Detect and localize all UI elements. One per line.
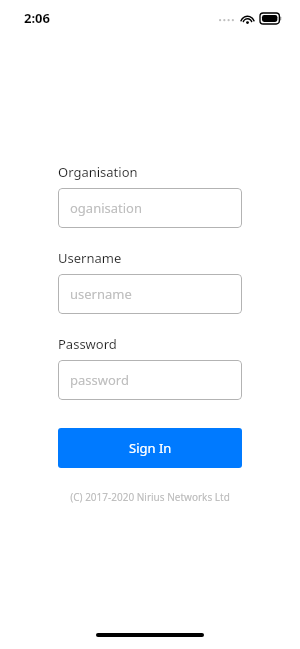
button[interactable]: Sign In bbox=[58, 428, 242, 468]
staticText: username bbox=[70, 285, 132, 303]
button[interactable]: oganisation bbox=[58, 188, 242, 228]
staticText: (C) 2017-2020 Nirius Networks Ltd bbox=[58, 490, 242, 504]
staticText: Username bbox=[58, 249, 122, 267]
staticText: 2:06 bbox=[24, 9, 50, 27]
button[interactable]: password bbox=[58, 360, 242, 400]
staticText: password bbox=[70, 371, 129, 389]
staticText: Organisation bbox=[58, 163, 138, 181]
button[interactable]: username bbox=[58, 274, 242, 314]
staticText: Sign In bbox=[129, 439, 172, 457]
other: Battery bbox=[260, 13, 282, 24]
staticText: Password bbox=[58, 335, 117, 353]
staticText: oganisation bbox=[70, 199, 143, 217]
